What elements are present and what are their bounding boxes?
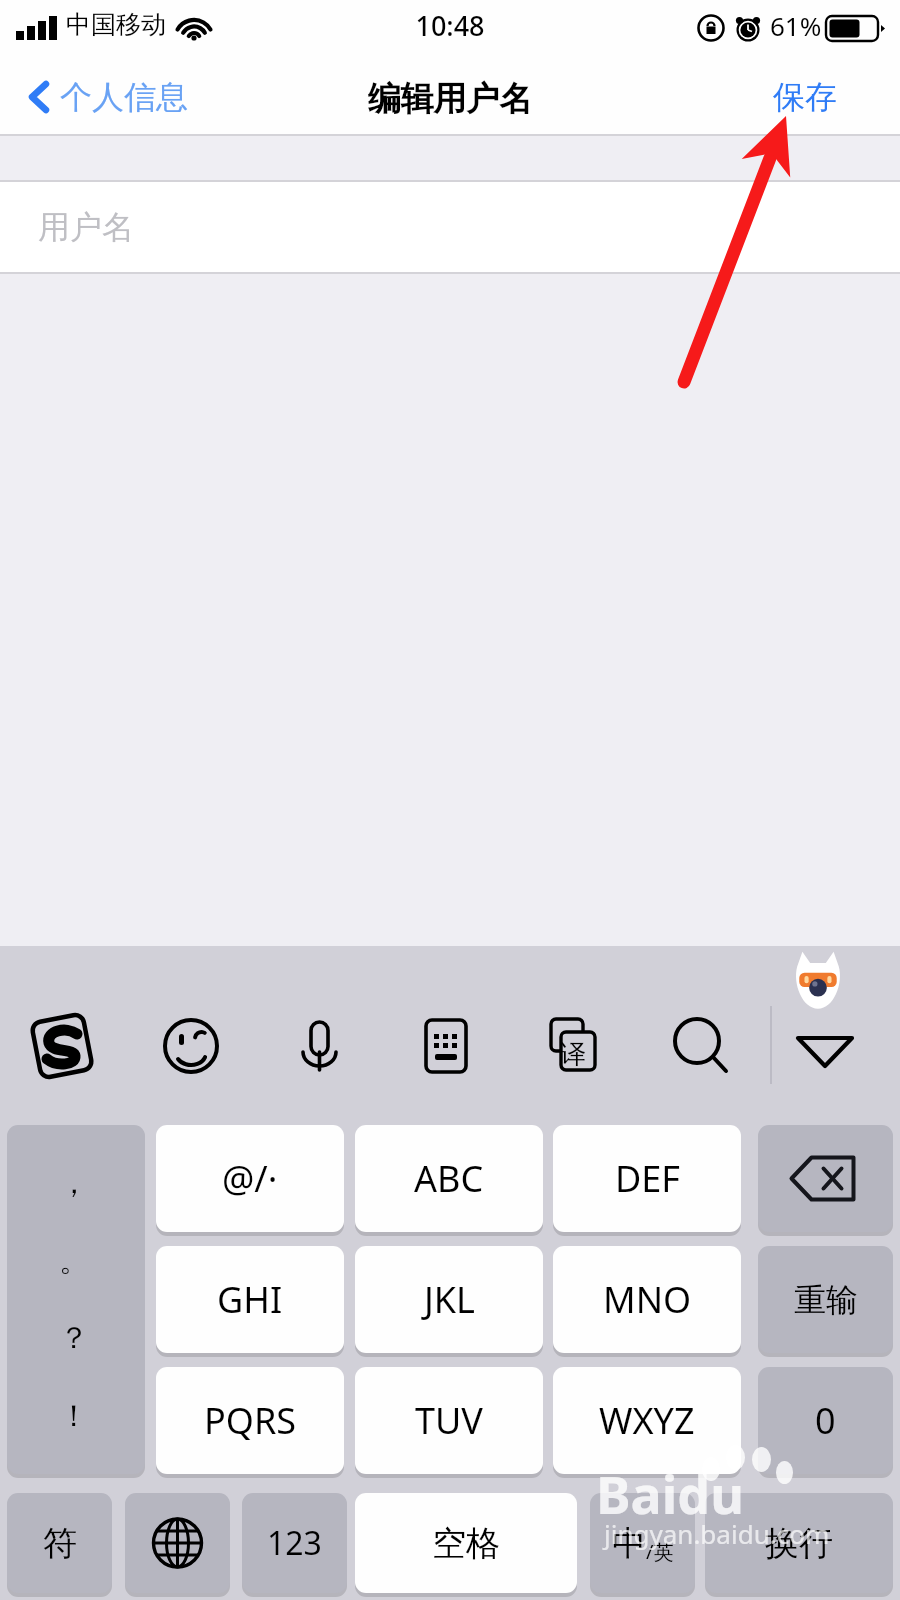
button[interactable]: TUV: [355, 1367, 543, 1474]
button[interactable]: 翻译: [537, 1008, 609, 1084]
button[interactable]: 123: [242, 1493, 347, 1593]
button[interactable]: 空格: [355, 1493, 577, 1593]
button[interactable]: GHI: [156, 1246, 344, 1353]
staticText: 保存: [773, 77, 837, 117]
staticText: GHI: [217, 1275, 283, 1324]
staticText: 10:48: [0, 7, 900, 39]
button[interactable]: 键盘布局: [410, 1008, 482, 1084]
staticText: @/·: [222, 1154, 278, 1203]
staticText: ，: [59, 1164, 89, 1202]
staticText: 123: [267, 1521, 322, 1565]
button[interactable]: 符: [7, 1493, 112, 1593]
staticText: 0: [815, 1396, 836, 1445]
button[interactable]: WXYZ: [553, 1367, 741, 1474]
button[interactable]: JKL: [355, 1246, 543, 1353]
button[interactable]: 语音输入: [283, 1008, 355, 1084]
button[interactable]: 输入法设置: [26, 1008, 98, 1084]
staticText: Baidu: [596, 1458, 744, 1529]
button[interactable]: 输入法助手: [792, 948, 844, 1010]
button[interactable]: 收起键盘: [790, 1008, 862, 1084]
staticText: ？: [59, 1319, 89, 1357]
button[interactable]: 0: [758, 1367, 893, 1474]
staticText: 换行: [765, 1522, 833, 1565]
staticText: 。: [59, 1242, 89, 1280]
staticText: JKL: [424, 1275, 475, 1324]
button[interactable]: 中: [590, 1493, 695, 1593]
staticText: 个人信息: [60, 77, 188, 117]
button[interactable]: PQRS: [156, 1367, 344, 1474]
button[interactable]: 搜索: [664, 1008, 736, 1084]
staticText: WXYZ: [599, 1396, 695, 1445]
staticText: TUV: [415, 1396, 483, 1445]
button[interactable]: @/·: [156, 1125, 344, 1232]
staticText: 空格: [432, 1522, 500, 1565]
button[interactable]: 保存: [740, 58, 870, 136]
button[interactable]: 重输: [758, 1246, 893, 1353]
staticText: 中国移动: [66, 9, 166, 40]
staticText: 编辑用户名: [0, 78, 900, 122]
button[interactable]: DEF: [553, 1125, 741, 1232]
button[interactable]: 个人信息: [14, 58, 229, 136]
staticText: jingyan.baidu.com: [604, 1516, 830, 1551]
staticText: 用户名: [38, 207, 134, 247]
button[interactable]: 切换输入语言: [125, 1493, 230, 1593]
staticText: ！: [59, 1397, 89, 1435]
button[interactable]: 删除: [758, 1125, 893, 1232]
button[interactable]: MNO: [553, 1246, 741, 1353]
staticText: 符: [43, 1522, 77, 1565]
staticText: 重输: [794, 1280, 858, 1320]
staticText: 中: [612, 1522, 646, 1565]
button[interactable]: ，: [7, 1125, 145, 1474]
button[interactable]: 表情: [155, 1008, 227, 1084]
staticText: PQRS: [204, 1396, 297, 1445]
staticText: DEF: [615, 1154, 680, 1203]
staticText: 译: [560, 1038, 586, 1071]
staticText: 61%: [770, 8, 822, 43]
staticText: /英: [646, 1538, 674, 1565]
staticText: ABC: [414, 1154, 484, 1203]
staticText: MNO: [603, 1275, 692, 1324]
button[interactable]: ABC: [355, 1125, 543, 1232]
button[interactable]: 用户名: [0, 182, 900, 272]
button[interactable]: 换行: [705, 1493, 893, 1593]
